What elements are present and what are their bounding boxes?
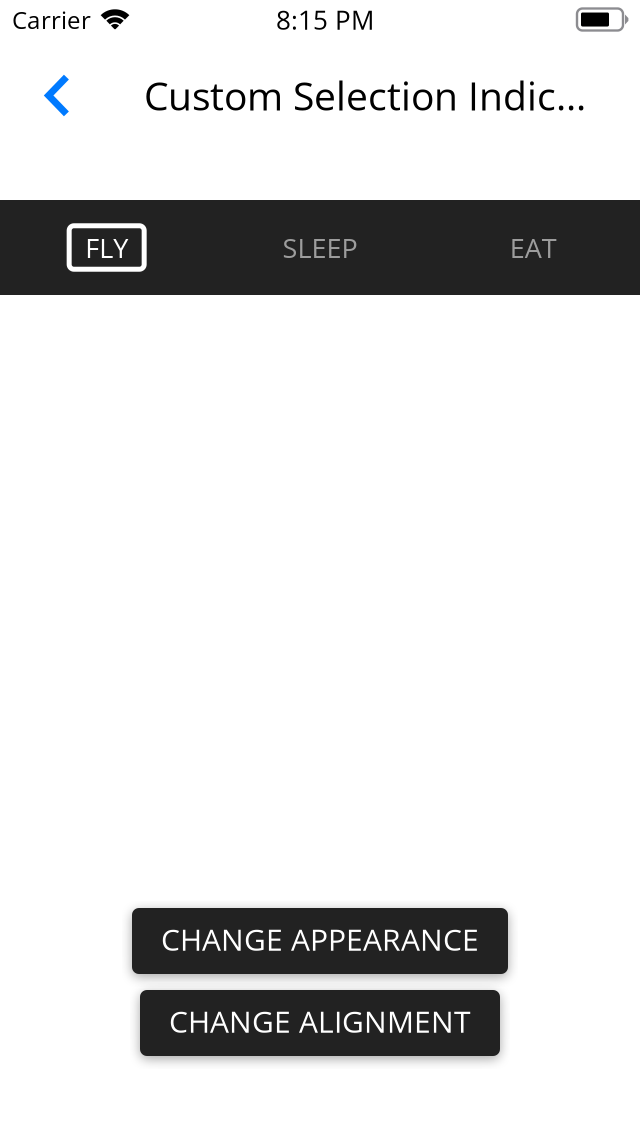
button[interactable]: EAT	[427, 200, 640, 295]
button[interactable]: CHANGE APPEARANCE	[132, 908, 508, 974]
button[interactable]: Back	[26, 57, 88, 133]
button[interactable]: FLY	[0, 200, 213, 295]
staticText: EAT	[510, 229, 557, 266]
staticText: FLY	[85, 229, 128, 266]
staticText: 8:15 PM	[276, 2, 374, 37]
staticText: Carrier	[12, 3, 91, 36]
button[interactable]: SLEEP	[213, 200, 427, 295]
staticText: CHANGE APPEARANCE	[161, 919, 479, 959]
staticText: SLEEP	[282, 229, 357, 266]
staticText: Custom Selection Indic...	[144, 69, 586, 122]
staticText: CHANGE ALIGNMENT	[169, 1001, 471, 1041]
button[interactable]: CHANGE ALIGNMENT	[140, 990, 500, 1056]
